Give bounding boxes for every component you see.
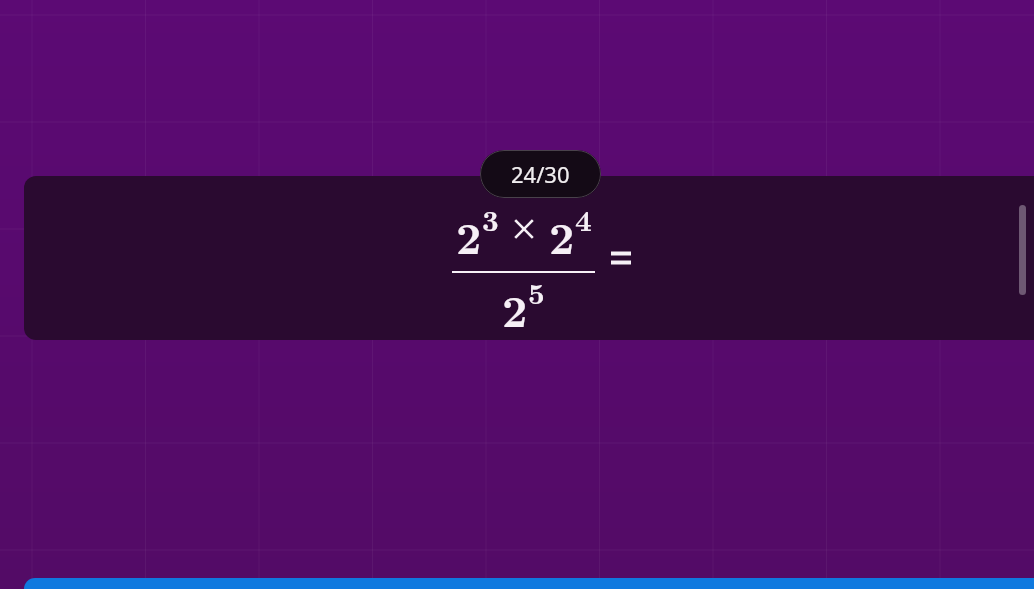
staticText: 2 [502,277,528,340]
staticText: 3 [482,198,499,239]
staticText: 24/30 [511,159,570,189]
button[interactable]: 24/30 [480,150,601,198]
staticText: 2 [549,204,575,267]
staticText: 4 [575,198,592,239]
staticText: 5 [528,271,545,312]
staticText: 2 [456,204,482,267]
button[interactable] [24,176,1034,340]
button[interactable]: Answer panel [24,578,1034,589]
